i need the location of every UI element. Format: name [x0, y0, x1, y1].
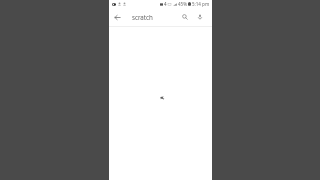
button[interactable]: Voice search — [192, 8, 207, 26]
button[interactable]: Search — [177, 8, 192, 26]
staticText: 5:14 pm — [192, 1, 210, 7]
staticText: 4 — [164, 1, 167, 7]
staticText: scratch — [132, 13, 153, 21]
button[interactable]: Back — [109, 8, 126, 26]
staticText: 45% — [178, 1, 187, 7]
